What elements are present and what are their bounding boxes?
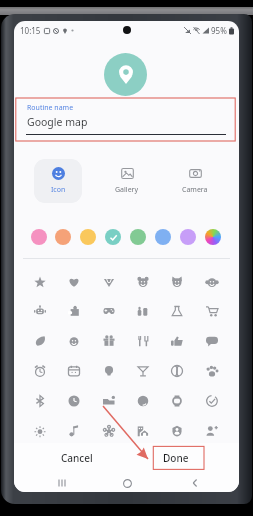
- button[interactable]: puzzle: [62, 299, 86, 323]
- button[interactable]: gift: [97, 329, 121, 353]
- staticText: Google map: [27, 115, 88, 129]
- button[interactable]: Cancel: [28, 447, 126, 469]
- button[interactable]: flask: [165, 299, 189, 323]
- button[interactable]: Colour 2: [55, 229, 71, 245]
- button[interactable]: sphere: [131, 389, 155, 413]
- button[interactable]: diamond: [97, 270, 121, 294]
- staticText: 95%: [211, 25, 227, 36]
- staticText: Cancel: [61, 451, 93, 465]
- button[interactable]: shield: [165, 419, 189, 443]
- button[interactable]: Recents: [52, 473, 72, 492]
- button[interactable]: cosmetics: [131, 299, 155, 323]
- button[interactable]: sun: [28, 419, 52, 443]
- staticText: 10:15: [20, 25, 41, 36]
- staticText: Icon: [51, 185, 66, 195]
- button[interactable]: star: [28, 270, 52, 294]
- button[interactable]: monkey: [200, 270, 224, 294]
- button[interactable]: thumbup: [165, 329, 189, 353]
- button[interactable]: robot: [28, 299, 52, 323]
- button[interactable]: Icon: [34, 159, 82, 203]
- button[interactable]: paw: [200, 359, 224, 383]
- button[interactable]: Camera: [171, 159, 219, 203]
- staticText: Done: [163, 451, 189, 465]
- button[interactable]: heart: [62, 270, 86, 294]
- button[interactable]: Colour 6: [155, 229, 171, 245]
- button[interactable]: baby: [62, 329, 86, 353]
- button[interactable]: personadd: [200, 419, 224, 443]
- button[interactable]: basketball: [165, 359, 189, 383]
- button[interactable]: alarm: [28, 359, 52, 383]
- staticText: Camera: [182, 185, 208, 195]
- button[interactable]: gamepad: [97, 299, 121, 323]
- button[interactable]: Gallery: [103, 159, 151, 203]
- button[interactable]: Colour 4: [105, 229, 121, 245]
- button[interactable]: cat: [165, 270, 189, 294]
- button[interactable]: clock: [62, 389, 86, 413]
- button[interactable]: watch: [165, 389, 189, 413]
- button[interactable]: Colour 5: [130, 229, 146, 245]
- button[interactable]: cart: [200, 299, 224, 323]
- button[interactable]: restaurant: [131, 329, 155, 353]
- button[interactable]: check: [200, 389, 224, 413]
- staticText: Gallery: [115, 185, 139, 195]
- button[interactable]: bluetooth: [28, 389, 52, 413]
- button[interactable]: music: [62, 419, 86, 443]
- button[interactable]: Custom colour: [205, 229, 221, 245]
- button[interactable]: bulb: [97, 359, 121, 383]
- button[interactable]: leaf: [28, 329, 52, 353]
- button[interactable]: home: [131, 419, 155, 443]
- button[interactable]: Back: [185, 473, 205, 492]
- button[interactable]: Colour 7: [180, 229, 196, 245]
- button[interactable]: chat: [200, 329, 224, 353]
- button[interactable]: calendar: [62, 359, 86, 383]
- button[interactable]: bear: [131, 270, 155, 294]
- button[interactable]: cocktail: [131, 359, 155, 383]
- button[interactable]: Colour 1: [31, 229, 47, 245]
- button[interactable]: folder: [97, 389, 121, 413]
- staticText: Routine name: [27, 103, 74, 113]
- button[interactable]: snow: [97, 419, 121, 443]
- button[interactable]: Done: [127, 447, 225, 469]
- button[interactable]: Colour 3: [80, 229, 96, 245]
- button[interactable]: Home: [117, 473, 137, 492]
